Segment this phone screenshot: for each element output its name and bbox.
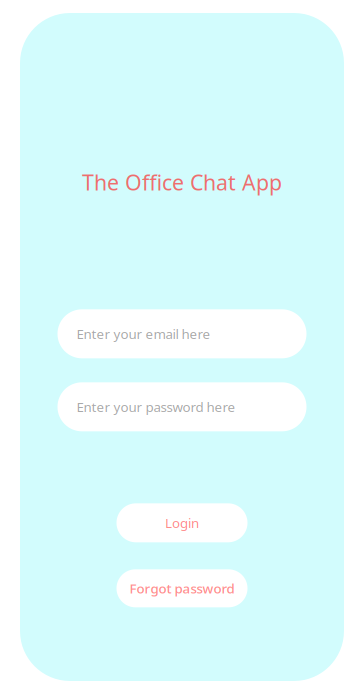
staticText: Login <box>165 514 199 532</box>
staticText: Enter your password here <box>76 398 235 416</box>
staticText: The Office Chat App <box>82 168 282 196</box>
button[interactable]: Forgot password <box>116 569 247 607</box>
staticText: Forgot password <box>129 579 234 597</box>
staticText: Enter your email here <box>76 325 210 343</box>
button[interactable]: Enter your email here <box>57 309 306 358</box>
button[interactable]: Login <box>116 503 247 542</box>
button[interactable]: Enter your password here <box>57 382 306 431</box>
